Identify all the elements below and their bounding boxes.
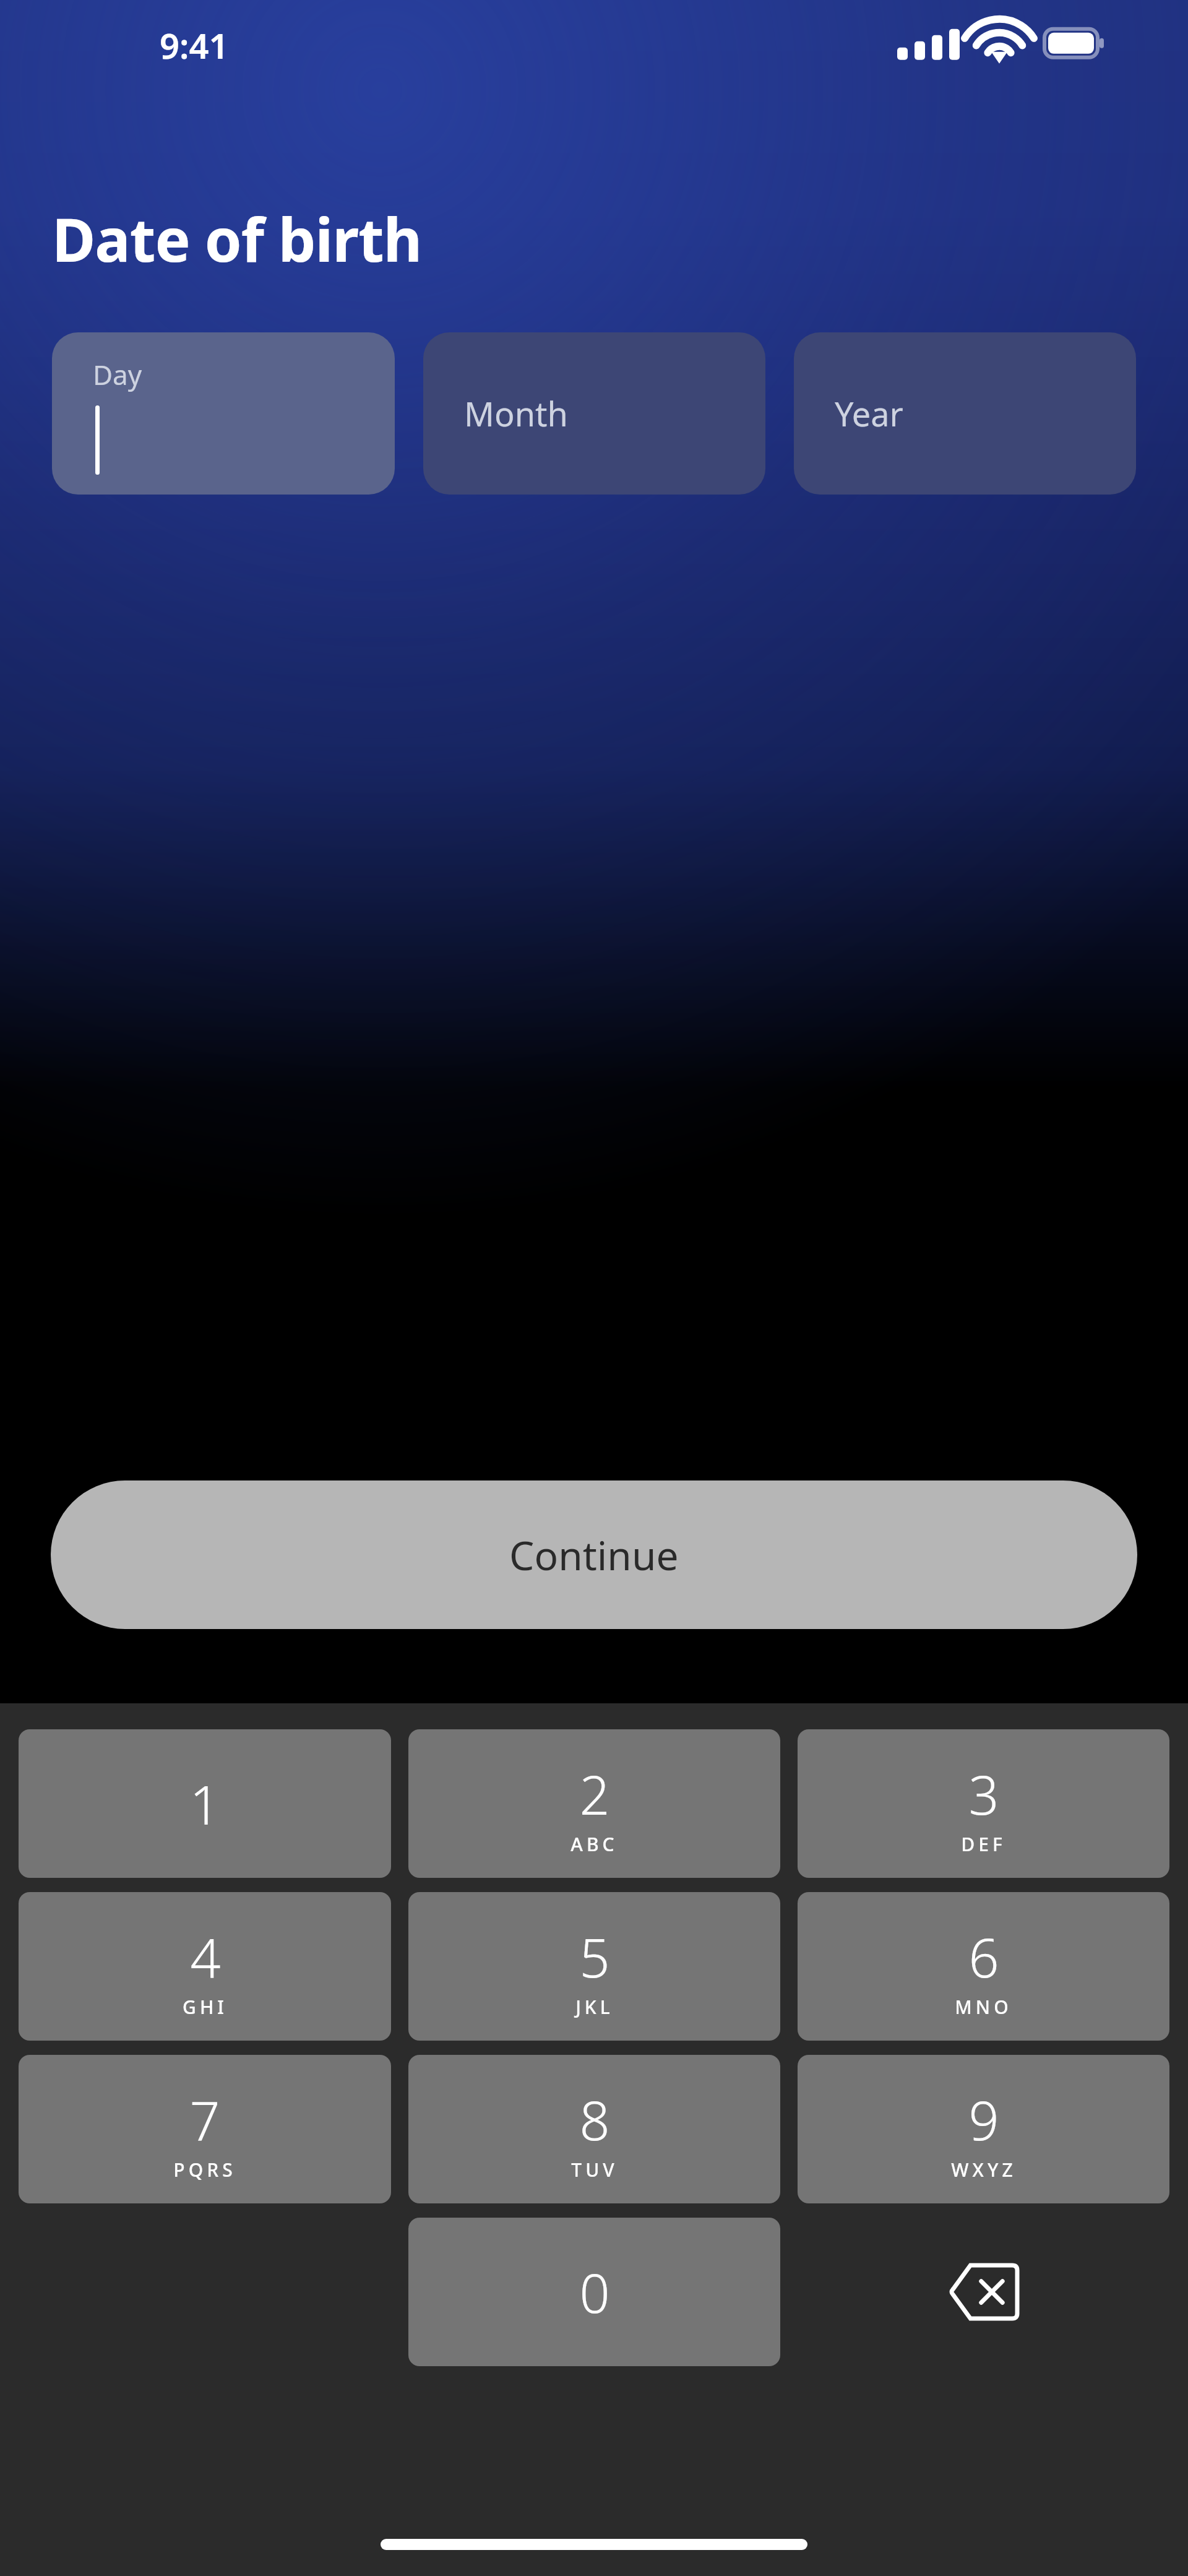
button[interactable]: 9 (798, 2055, 1169, 2203)
staticText: Month (464, 391, 568, 436)
staticText: Date of birth (52, 198, 422, 279)
button[interactable]: 4 (19, 1892, 391, 2041)
button[interactable]: 0 (408, 2218, 780, 2366)
staticText: 2 (579, 1758, 610, 1830)
button[interactable]: Day (52, 332, 395, 495)
staticText: TUV (571, 2157, 618, 2182)
staticText: ABC (570, 1831, 618, 1857)
staticText: 3 (968, 1758, 999, 1830)
staticText: GHI (183, 1994, 228, 2020)
staticText: WXYZ (951, 2157, 1017, 2182)
button[interactable]: 5 (408, 1892, 780, 2041)
button[interactable]: Backspace (798, 2218, 1169, 2366)
staticText: 4 (190, 1921, 221, 1993)
staticText: 9:41 (160, 22, 229, 69)
button[interactable]: Month (423, 332, 765, 495)
staticText: 9 (968, 2083, 999, 2156)
staticText: Year (835, 391, 903, 436)
staticText: 6 (968, 1921, 999, 1993)
button[interactable]: 7 (19, 2055, 391, 2203)
staticText: Day (93, 356, 142, 393)
staticText: DEF (961, 1831, 1006, 1857)
staticText: PQRS (173, 2157, 236, 2182)
button[interactable]: 6 (798, 1892, 1169, 2041)
staticText: 7 (189, 2083, 220, 2156)
staticText: JKL (575, 1994, 614, 2020)
button[interactable]: 1 (19, 1729, 391, 1878)
button[interactable]: 8 (408, 2055, 780, 2203)
staticText: 5 (579, 1921, 610, 1993)
button[interactable]: 3 (798, 1729, 1169, 1878)
staticText: 1 (189, 1768, 220, 1840)
staticText: MNO (955, 1994, 1012, 2020)
button[interactable]: Continue (51, 1480, 1137, 1629)
staticText: 8 (579, 2083, 610, 2156)
button[interactable]: Year (794, 332, 1136, 495)
staticText: 0 (579, 2256, 610, 2328)
staticText: Continue (509, 1528, 679, 1582)
button[interactable]: 2 (408, 1729, 780, 1878)
